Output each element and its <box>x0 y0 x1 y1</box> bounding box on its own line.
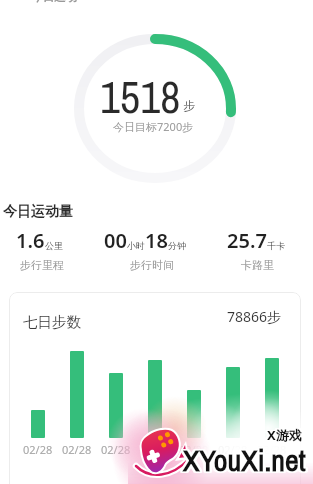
staticText: 02/28 <box>257 442 287 457</box>
staticText: X游戏 <box>269 426 304 444</box>
staticText: X游戏 <box>268 427 303 445</box>
staticText: 02/28 <box>140 442 170 457</box>
staticText: XYouXi.net <box>185 440 308 480</box>
staticText: 02/28 <box>179 442 209 457</box>
staticText: 千卡 <box>267 240 285 251</box>
staticText: 今日运动量 <box>3 203 73 221</box>
staticText: 今日目标7200步 <box>113 119 194 134</box>
staticText: 七日步数 <box>23 313 81 331</box>
button[interactable]: 七日步数 <box>9 292 301 484</box>
staticText: 00 <box>104 227 127 254</box>
staticText: X游戏 <box>266 425 301 443</box>
staticText: X游戏 <box>268 425 303 443</box>
staticText: 02/28 <box>101 442 131 457</box>
button[interactable] <box>134 421 194 483</box>
staticText: 1518 <box>100 67 181 126</box>
staticText: 78866步 <box>227 307 282 326</box>
staticText: 02/28 <box>62 442 92 457</box>
staticText: 今日运动 <box>31 0 77 4</box>
staticText: 02/28 <box>23 442 53 457</box>
staticText: XYouXi.net <box>181 440 304 480</box>
staticText: XYouXi.net <box>184 439 307 479</box>
staticText: X游戏 <box>269 427 304 445</box>
staticText: X游戏 <box>265 426 300 444</box>
staticText: 卡路里 <box>241 258 274 272</box>
staticText: XYouXi.net <box>182 439 305 479</box>
staticText: XYouXi.net <box>185 439 308 479</box>
staticText: XYouXi.net <box>185 441 308 481</box>
staticText: XYouXi.net <box>182 441 305 481</box>
staticText: XYouXi.net <box>181 439 304 479</box>
staticText: XYouXi.net <box>182 440 305 480</box>
staticText: XYouXi.net <box>183 441 306 481</box>
staticText: 步 <box>183 98 195 113</box>
staticText: 25.7 <box>227 227 267 254</box>
staticText: 小时 <box>127 240 145 251</box>
staticText: 18 <box>145 227 168 254</box>
staticText: 步行里程 <box>20 258 64 272</box>
staticText: XYouXi.net <box>184 440 307 480</box>
staticText: X游戏 <box>266 426 301 444</box>
staticText: X游戏 <box>269 425 304 443</box>
button[interactable]: X游戏 <box>267 426 302 444</box>
staticText: XYouXi.net <box>181 441 304 481</box>
staticText: XYouXi.net <box>183 440 306 480</box>
staticText: 1.6 <box>16 227 45 254</box>
staticText: X游戏 <box>267 427 302 445</box>
staticText: 分钟 <box>168 240 186 251</box>
staticText: X游戏 <box>266 427 301 445</box>
staticText: 公里 <box>45 240 63 251</box>
staticText: X游戏 <box>267 426 302 444</box>
staticText: XYouXi.net <box>183 439 306 479</box>
staticText: X游戏 <box>268 426 303 444</box>
staticText: X游戏 <box>265 427 300 445</box>
staticText: XYouXi.net <box>184 441 307 481</box>
staticText: X游戏 <box>267 425 302 443</box>
staticText: 02/28 <box>218 442 248 457</box>
staticText: 步行时间 <box>130 258 174 272</box>
staticText: X游戏 <box>265 425 300 443</box>
button[interactable]: XYouXi.net <box>183 440 306 480</box>
